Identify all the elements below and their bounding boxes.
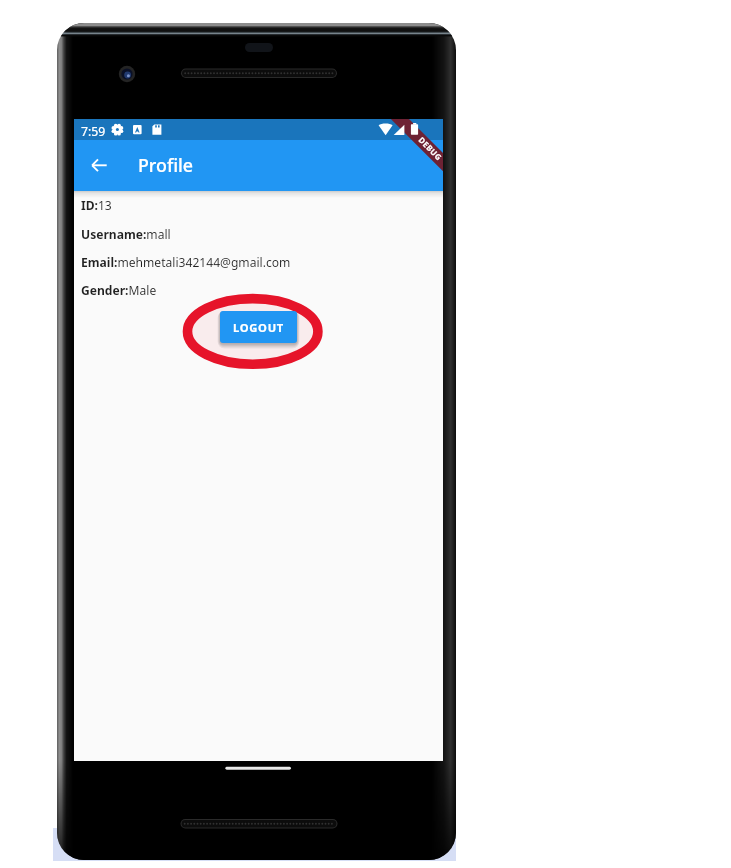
staticText: Profile [138, 153, 194, 177]
button[interactable]: LOGOUT [220, 311, 297, 343]
staticText: LOGOUT [233, 320, 284, 335]
staticText: ID:13 [81, 197, 112, 213]
staticText: Gender:Male [81, 282, 157, 298]
staticText: Email:mehmetali342144@gmail.com [81, 254, 291, 270]
button[interactable]: Back [82, 151, 116, 185]
staticText: 7:59 [81, 123, 106, 140]
staticText: Username:mall [81, 226, 171, 242]
